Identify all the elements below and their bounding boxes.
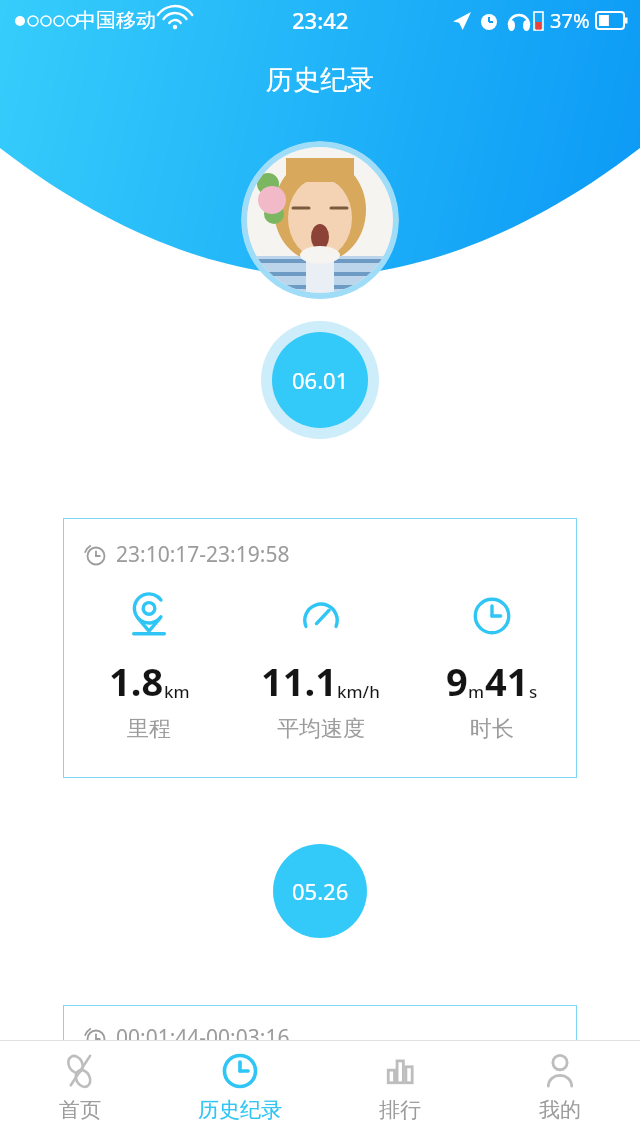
staticText: 时长 xyxy=(470,715,514,743)
button[interactable]: History xyxy=(160,1041,320,1136)
staticText: km xyxy=(164,680,190,703)
staticText: 中国移动 xyxy=(76,8,156,33)
staticText: 平均速度 xyxy=(277,715,365,743)
staticText: 历史纪录 xyxy=(198,1097,282,1123)
staticText: 11.1 xyxy=(261,655,337,707)
staticText: 00:01:44-00:03:16 xyxy=(116,1023,290,1052)
staticText: 05.26 xyxy=(292,876,349,906)
button[interactable]: Profile photo xyxy=(241,141,399,299)
staticText: 1.8 xyxy=(109,655,164,707)
button[interactable]: 05.26 xyxy=(273,844,367,938)
staticText: 历史纪录 xyxy=(266,63,374,97)
button[interactable]: Ranking xyxy=(320,1041,480,1136)
staticText: 里程 xyxy=(127,715,171,743)
staticText: 首页 xyxy=(59,1097,101,1123)
staticText: 排行 xyxy=(379,1097,421,1123)
button[interactable]: Home xyxy=(0,1041,160,1136)
button[interactable]: 23:10:17-23:19:58 xyxy=(63,518,577,778)
button[interactable]: 06.01 xyxy=(272,332,368,428)
staticText: s xyxy=(529,680,538,703)
staticText: 我的 xyxy=(539,1097,581,1123)
staticText: 41 xyxy=(485,655,529,707)
staticText: km/h xyxy=(337,680,380,703)
staticText: m xyxy=(468,680,485,703)
staticText: 06.01 xyxy=(292,365,349,395)
button[interactable]: Profile xyxy=(480,1041,640,1136)
button[interactable]: 00:01:44-00:03:16 xyxy=(63,1005,577,1065)
staticText: 23:10:17-23:19:58 xyxy=(116,540,290,569)
staticText: 37% xyxy=(550,7,590,34)
staticText: 23:42 xyxy=(292,5,349,35)
staticText: 9 xyxy=(446,655,468,707)
